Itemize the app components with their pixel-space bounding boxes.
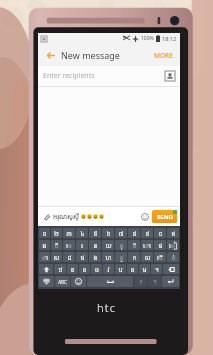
button[interactable]: រ	[76, 240, 88, 250]
button[interactable]: Insert emoji	[139, 211, 150, 222]
staticText: New message	[61, 49, 120, 61]
staticText: Enter recipients	[43, 71, 95, 81]
button[interactable]: ២	[51, 228, 62, 238]
staticText: យ	[105, 241, 112, 250]
button[interactable]: ឋ	[54, 264, 66, 274]
button[interactable]: ្	[115, 252, 127, 262]
staticText: SEND	[157, 213, 173, 221]
staticText: ោ	[143, 241, 151, 250]
staticText: ់	[171, 253, 176, 262]
staticText: ា	[42, 253, 48, 262]
button[interactable]: ៦	[102, 228, 114, 238]
button[interactable]: ប	[115, 264, 126, 274]
staticText: ហ	[105, 253, 112, 262]
button[interactable]: ក	[128, 252, 140, 262]
button[interactable]: ៩	[141, 228, 153, 238]
button[interactable]: យ	[102, 240, 114, 250]
button[interactable]: ដ	[63, 252, 75, 262]
button[interactable]: វ	[103, 264, 114, 274]
button[interactable]: ង	[89, 252, 101, 262]
staticText: ក	[132, 253, 137, 262]
button[interactable]: Shift	[39, 264, 53, 274]
button[interactable]: ុ	[115, 240, 127, 250]
button[interactable]: ៨	[128, 228, 140, 238]
staticText: ល	[144, 253, 151, 262]
button[interactable]: Backspace	[163, 264, 179, 274]
button[interactable]: ។	[148, 276, 161, 287]
staticText: 18:12	[162, 35, 177, 42]
button[interactable]: Back	[43, 48, 57, 62]
staticText: ខ	[82, 265, 87, 274]
button[interactable]: ឥ	[167, 228, 179, 238]
staticText: ម	[142, 265, 147, 274]
button[interactable]: ឆ	[39, 240, 50, 250]
staticText: ិ	[132, 241, 137, 250]
button[interactable]: ០	[154, 228, 166, 238]
staticText: ឥ	[171, 229, 176, 238]
button[interactable]: Enter	[162, 276, 179, 287]
button[interactable]: ល	[141, 252, 153, 262]
staticText: ៖	[139, 277, 143, 286]
button[interactable]: ៤	[76, 228, 88, 238]
button[interactable]: Add recipient from contacts	[165, 71, 175, 81]
staticText: ៩	[145, 229, 150, 238]
staticText: 100%	[141, 35, 154, 42]
staticText: ABC	[58, 279, 67, 285]
button[interactable]: ៖	[134, 276, 147, 287]
staticText: ង	[93, 253, 98, 262]
button[interactable]: ន	[127, 264, 138, 274]
button[interactable]: ហ	[102, 252, 114, 262]
staticText: ច	[95, 265, 99, 274]
staticText: ០	[158, 229, 163, 238]
staticText: ៤	[80, 229, 85, 238]
staticText: ១	[42, 229, 47, 238]
button[interactable]: ៣	[63, 228, 75, 238]
button[interactable]: ឹ	[51, 240, 62, 250]
staticText: ៣	[66, 229, 72, 238]
button[interactable]: ថ	[76, 252, 88, 262]
staticText: ឌ	[70, 265, 75, 274]
staticText: ៨	[132, 229, 137, 238]
button[interactable]: Hide keyboard	[39, 276, 54, 287]
button[interactable]: ផ	[154, 240, 166, 250]
button[interactable]: ច	[91, 264, 102, 274]
staticText: ។	[155, 265, 159, 274]
button[interactable]: ១	[39, 228, 50, 238]
staticText: រ	[81, 241, 83, 250]
button[interactable]: ា	[39, 252, 50, 262]
button[interactable]: ឌ	[67, 264, 78, 274]
button[interactable]: ិ	[128, 240, 140, 250]
button[interactable]: ត	[89, 240, 101, 250]
staticText: ុ	[119, 241, 124, 250]
staticText: MORE	[154, 51, 173, 60]
staticText: ផ	[158, 241, 163, 250]
button[interactable]: Space	[87, 276, 133, 287]
button[interactable]: SEND	[152, 210, 177, 223]
button[interactable]: ស	[51, 252, 62, 262]
button[interactable]: ើ	[154, 252, 166, 262]
button[interactable]: MORE	[152, 49, 175, 62]
button[interactable]: Emoji	[71, 276, 86, 287]
button[interactable]: ៥	[89, 228, 101, 238]
button[interactable]: ។	[151, 264, 162, 274]
staticText: ស	[53, 253, 60, 262]
button[interactable]: Attach	[41, 211, 52, 222]
button[interactable]: ់	[167, 252, 179, 262]
staticText: ២	[54, 229, 59, 238]
button[interactable]: ខ	[79, 264, 90, 274]
button[interactable]: ABC	[55, 276, 70, 287]
staticText: ។	[153, 277, 157, 286]
button[interactable]: ៧	[115, 228, 127, 238]
button[interactable]: េ	[63, 240, 75, 250]
button[interactable]: ោ	[141, 240, 153, 250]
staticText: ថ	[80, 253, 85, 262]
staticText: អរុណសួស្តី	[53, 212, 80, 221]
staticText: ប	[118, 265, 123, 274]
staticText: ឋ	[58, 265, 63, 274]
button[interactable]: ៀ	[167, 240, 179, 250]
staticText: ៦	[106, 229, 111, 238]
staticText: ឹ	[54, 241, 59, 250]
button[interactable]: ម	[139, 264, 150, 274]
staticText: ត	[93, 241, 98, 250]
staticText: ៀ	[169, 241, 177, 250]
